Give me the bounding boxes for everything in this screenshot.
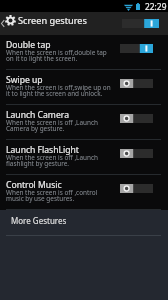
button[interactable]: Swipe up bbox=[0, 70, 168, 105]
staticText: Control Music bbox=[6, 179, 62, 191]
button[interactable]: More Gestures bbox=[0, 210, 168, 236]
staticText: More Gestures bbox=[11, 215, 67, 226]
staticText: When the screen is off ,Launch flashligh… bbox=[6, 153, 98, 168]
button[interactable] bbox=[120, 184, 153, 193]
button[interactable] bbox=[120, 114, 153, 123]
button[interactable] bbox=[122, 19, 159, 28]
button[interactable]: Launch FlashLight bbox=[0, 140, 168, 175]
staticText: Swipe up bbox=[6, 74, 43, 86]
button[interactable]: Double tap bbox=[0, 35, 168, 70]
button[interactable] bbox=[120, 79, 153, 88]
staticText: Launch Camera bbox=[6, 109, 69, 121]
button[interactable]: Launch Camera bbox=[0, 105, 168, 140]
staticText: When the screen is off,swipe up on it to… bbox=[6, 83, 111, 98]
button[interactable] bbox=[120, 149, 153, 158]
staticText: When the screen is off ,control music by… bbox=[6, 188, 98, 203]
button[interactable]: Control Music bbox=[0, 175, 168, 210]
button[interactable] bbox=[120, 44, 153, 53]
staticText: When the screen is off,double tap on it … bbox=[6, 48, 107, 63]
button[interactable]: Back bbox=[0, 18, 5, 29]
staticText: When the screen is off ,Launch Camera by… bbox=[6, 118, 98, 133]
staticText: Double tap bbox=[6, 39, 51, 51]
staticText: Launch FlashLight bbox=[6, 144, 79, 156]
staticText: 22:29 bbox=[145, 1, 167, 12]
staticText: Screen gestures bbox=[18, 14, 87, 27]
